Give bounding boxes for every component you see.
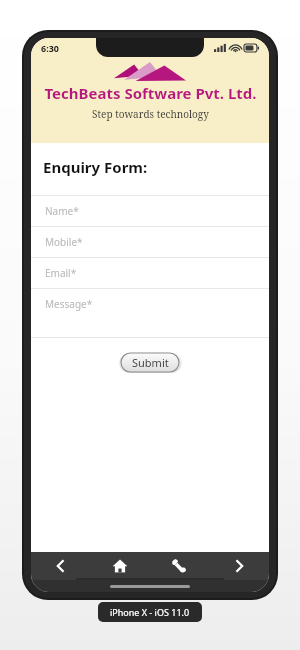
button[interactable]: Message* xyxy=(31,289,269,319)
staticText: Email* xyxy=(45,266,77,280)
staticText: iPhone X - iOS 11.0 xyxy=(110,606,190,618)
staticText: TechBeats Software Pvt. Ltd. xyxy=(44,83,257,103)
staticText: Message* xyxy=(45,297,93,311)
button[interactable]: Home xyxy=(90,552,149,580)
button[interactable]: Name* xyxy=(31,196,269,226)
button[interactable]: Submit xyxy=(119,352,182,373)
staticText: Mobile* xyxy=(45,235,83,249)
button[interactable]: Email* xyxy=(31,258,269,288)
staticText: Name* xyxy=(45,204,79,218)
button[interactable]: Mobile* xyxy=(31,227,269,257)
staticText: Submit xyxy=(132,355,169,370)
button[interactable]: Back xyxy=(31,552,90,580)
button[interactable]: Call xyxy=(149,552,209,580)
staticText: Enquiry Form: xyxy=(43,157,148,177)
button[interactable]: Forward xyxy=(209,552,269,580)
staticText: 6:30 xyxy=(41,42,59,54)
button[interactable]: iPhone X - iOS 11.0 xyxy=(98,602,202,622)
staticText: Step towards technology xyxy=(92,107,209,121)
